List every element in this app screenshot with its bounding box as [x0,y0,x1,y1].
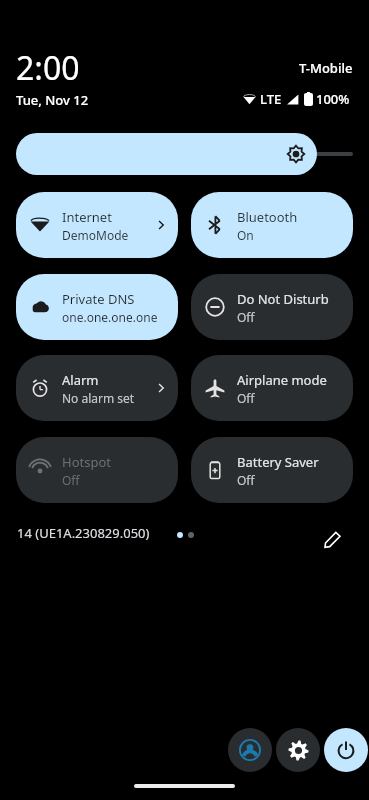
staticText: Off [237,309,255,325]
button[interactable]: Alarm [16,355,178,421]
staticText: Private DNS [62,290,135,308]
staticText: Battery Saver [237,453,319,471]
staticText: Off [237,472,255,488]
button[interactable]: Power [324,728,368,772]
button[interactable]: Edit tiles [313,518,353,558]
staticText: Internet [62,208,112,226]
button[interactable]: Bluetooth [191,192,353,258]
button[interactable]: Brightness [16,133,317,175]
button[interactable]: Private DNS [16,274,178,340]
staticText: Hotspot [62,453,111,471]
staticText: LTE [260,90,282,108]
staticText: 2:00 [16,46,80,90]
button[interactable]: Hotspot [16,437,178,503]
staticText: Do Not Disturb [237,290,329,308]
staticText: On [237,227,254,243]
button[interactable]: Settings [276,728,320,772]
staticText: Bluetooth [237,208,298,226]
staticText: Tue, Nov 12 [16,91,89,109]
staticText: one.one.one.one [62,309,158,325]
staticText: DemoMode [62,227,129,243]
button[interactable]: Internet [16,192,178,258]
staticText: 100% [316,90,350,108]
staticText: Alarm [62,371,99,389]
staticText: 14 (UE1A.230829.050) [17,524,150,542]
staticText: T-Mobile [299,59,353,77]
staticText: Off [62,472,80,488]
staticText: Airplane mode [237,371,327,389]
staticText: No alarm set [62,390,135,406]
button[interactable]: Do Not Disturb [191,274,353,340]
staticText: Off [237,390,255,406]
button[interactable]: Airplane mode [191,355,353,421]
button[interactable]: User [228,728,272,772]
button[interactable]: Battery Saver [191,437,353,503]
